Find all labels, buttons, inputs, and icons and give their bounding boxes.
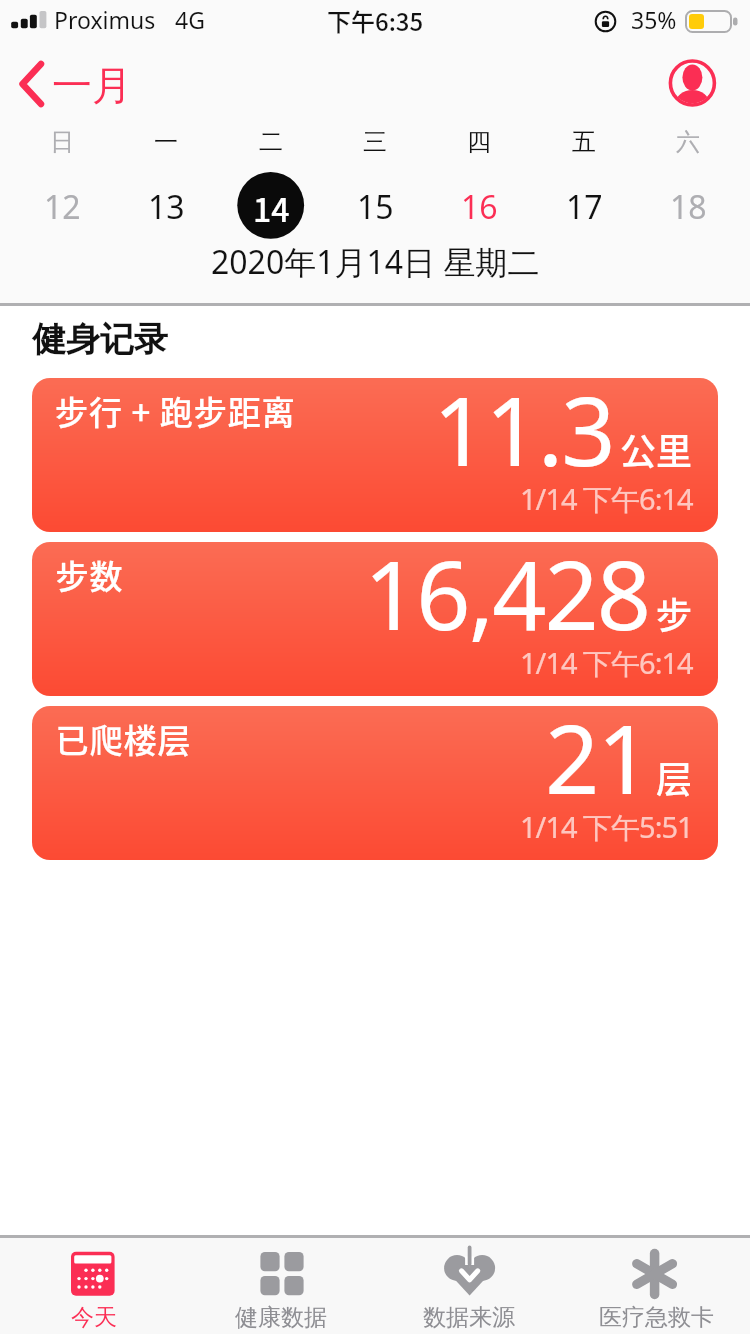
staticText: 健康数据 [235, 1303, 327, 1332]
staticText: 1/14 下午5:51 [520, 807, 693, 847]
staticText: 三 [363, 127, 387, 157]
button[interactable] [660, 51, 726, 117]
staticText: 1/14 下午6:14 [520, 643, 693, 683]
button[interactable]: 已爬楼层 [32, 706, 718, 860]
staticText: 下午6:35 [327, 3, 424, 38]
staticText: 日 [50, 127, 74, 157]
staticText: 五 [572, 127, 596, 157]
staticText: 16 [461, 185, 498, 229]
button[interactable] [10, 55, 130, 115]
button[interactable] [187, 1235, 375, 1334]
staticText: 12 [44, 185, 81, 229]
staticText: 11.3 [433, 364, 614, 493]
staticText: 层 [656, 751, 693, 803]
staticText: 医疗急救卡 [599, 1303, 714, 1332]
button[interactable] [339, 165, 411, 245]
button[interactable] [0, 1235, 188, 1334]
button[interactable] [374, 1235, 562, 1334]
staticText: 18 [670, 185, 707, 229]
button[interactable] [548, 165, 620, 245]
staticText: Proximus [54, 4, 156, 35]
staticText: 健身记录 [32, 318, 168, 361]
staticText: 已爬楼层 [55, 715, 191, 763]
staticText: 21 [545, 692, 650, 821]
staticText: 4G [175, 4, 205, 35]
staticText: 13 [148, 185, 185, 229]
staticText: 2020年1月14日 星期二 [211, 240, 540, 284]
button[interactable]: 步行 + 跑步距离 [32, 378, 718, 532]
staticText: 步 [656, 587, 693, 639]
staticText: 二 [259, 127, 283, 157]
staticText: 一 [154, 127, 178, 157]
staticText: 四 [467, 127, 491, 157]
button[interactable] [443, 165, 515, 245]
button[interactable] [26, 165, 98, 245]
staticText: 17 [566, 185, 603, 229]
staticText: 35% [631, 4, 677, 35]
button[interactable] [235, 165, 307, 245]
button[interactable]: 步数 [32, 542, 718, 696]
staticText: 步数 [55, 551, 123, 599]
button[interactable] [652, 165, 724, 245]
staticText: 15 [357, 185, 394, 229]
button[interactable] [561, 1235, 749, 1334]
staticText: 步行 + 跑步距离 [55, 387, 296, 435]
staticText: 数据来源 [423, 1303, 515, 1332]
staticText: 16,428 [364, 528, 650, 657]
button[interactable] [130, 165, 202, 245]
staticText: 今天 [71, 1303, 117, 1332]
staticText: 1/14 下午6:14 [520, 479, 693, 519]
staticText: 六 [676, 127, 700, 157]
staticText: 14 [253, 185, 290, 231]
staticText: 一月 [52, 60, 132, 110]
staticText: 公里 [620, 423, 693, 475]
